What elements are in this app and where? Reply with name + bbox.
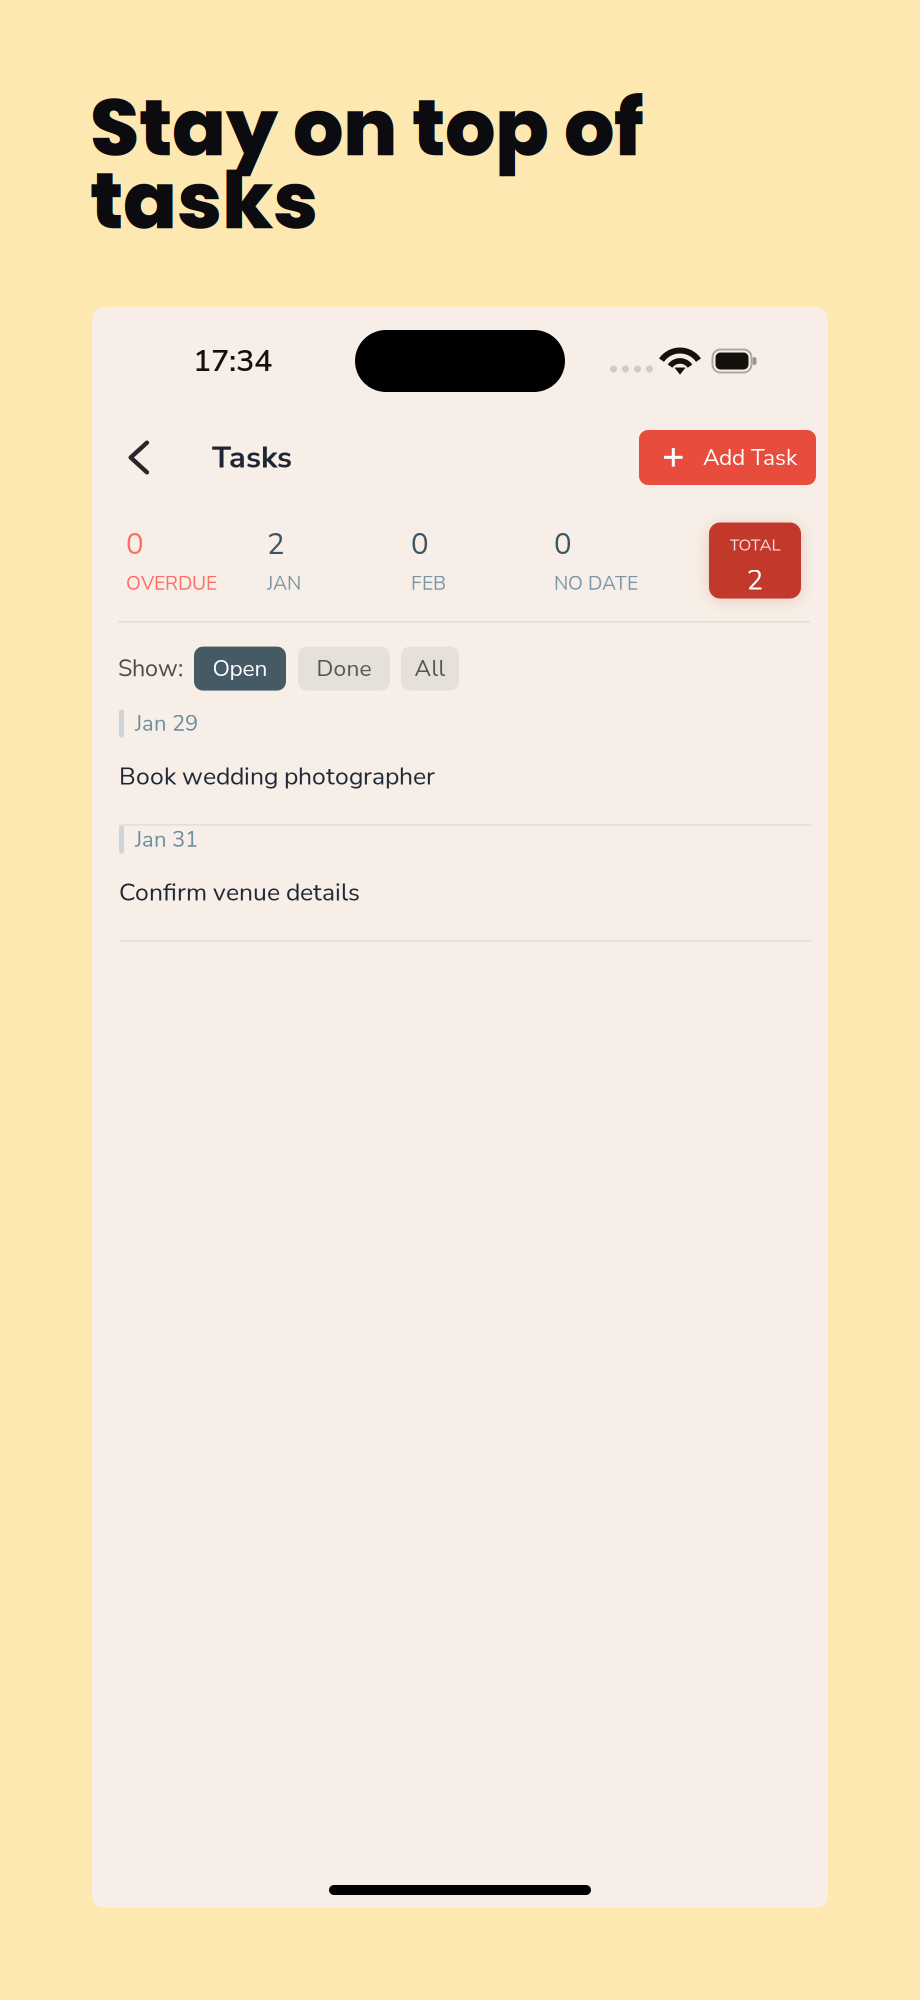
- button[interactable]: Open: [194, 647, 286, 691]
- staticText: Add Task: [703, 442, 797, 473]
- staticText: Show:: [118, 653, 183, 684]
- button[interactable]: 0: [126, 522, 267, 598]
- button[interactable]: Jan 29: [119, 710, 811, 826]
- staticText: Tasks: [212, 437, 292, 478]
- staticText: 0: [126, 524, 144, 564]
- staticText: Done: [316, 653, 371, 684]
- button[interactable]: Jan 31: [119, 826, 811, 942]
- staticText: 2: [746, 561, 763, 599]
- button[interactable]: Back: [113, 430, 165, 484]
- button[interactable]: TOTAL: [709, 522, 801, 598]
- staticText: 17:34: [193, 340, 272, 382]
- staticText: Book wedding photographer: [119, 760, 435, 793]
- staticText: tasks: [90, 145, 318, 256]
- button[interactable]: Add Task: [639, 430, 816, 485]
- button[interactable]: 0: [554, 522, 704, 598]
- button[interactable]: 0: [411, 522, 554, 598]
- staticText: 2: [267, 524, 285, 564]
- staticText: JAN: [267, 570, 301, 597]
- staticText: TOTAL: [729, 533, 780, 556]
- button[interactable]: 2: [267, 522, 411, 598]
- staticText: OVERDUE: [126, 570, 217, 597]
- staticText: NO DATE: [554, 570, 638, 597]
- staticText: Confirm venue details: [119, 876, 360, 909]
- staticText: All: [414, 653, 445, 684]
- staticText: Stay on top of: [90, 72, 644, 183]
- staticText: 0: [554, 524, 572, 564]
- staticText: FEB: [411, 570, 446, 597]
- button[interactable]: Done: [298, 647, 390, 691]
- staticText: 0: [411, 524, 429, 564]
- staticText: Open: [212, 653, 267, 684]
- staticText: Jan 29: [135, 709, 198, 739]
- button[interactable]: All: [401, 647, 459, 691]
- staticText: Jan 31: [135, 825, 198, 855]
